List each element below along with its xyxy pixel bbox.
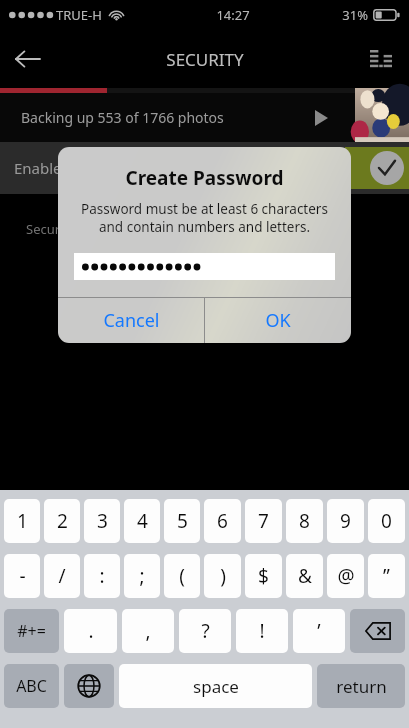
staticText: . — [88, 618, 94, 644]
button[interactable]: . — [64, 609, 117, 653]
staticText: space — [193, 675, 239, 698]
button[interactable]: Backing up 553 of 1766 photos — [0, 88, 355, 142]
staticText: OK — [265, 308, 291, 333]
staticText: 14:27 — [216, 6, 250, 24]
button[interactable]: 8 — [286, 499, 323, 543]
button[interactable]: @ — [327, 554, 364, 598]
staticText: Password must be at least 6 characters a… — [69, 200, 340, 236]
button[interactable]: ? — [179, 609, 231, 653]
staticText: / — [58, 563, 66, 589]
staticText: 5 — [177, 508, 188, 534]
staticText: Security code will be required to be ent… — [26, 220, 295, 238]
staticText: , — [145, 618, 151, 644]
button[interactable]: 4 — [124, 499, 160, 543]
button[interactable]: 6 — [204, 499, 241, 543]
button[interactable]: Cancel — [58, 298, 204, 343]
button[interactable]: 7 — [245, 499, 282, 543]
button[interactable]: Back — [0, 31, 56, 87]
staticText: ” — [383, 563, 390, 589]
button[interactable]: #+= — [4, 609, 59, 653]
button[interactable]: : — [84, 554, 120, 598]
button[interactable]: OK — [205, 298, 351, 343]
button[interactable]: ABC — [4, 664, 59, 708]
staticText: 6 — [217, 508, 228, 534]
staticText: ’ — [317, 618, 321, 644]
button[interactable]: Change keyboard — [64, 664, 114, 708]
staticText: 8 — [299, 508, 310, 534]
button[interactable]: 1 — [4, 499, 40, 543]
staticText: Cancel — [103, 308, 160, 333]
button[interactable]: ( — [164, 554, 200, 598]
staticText: Enable Security — [14, 158, 122, 178]
button[interactable]: space — [119, 664, 312, 708]
button[interactable]: 9 — [327, 499, 364, 543]
button[interactable]: Security enabled — [345, 147, 409, 189]
staticText: ! — [259, 618, 265, 644]
button[interactable]: $ — [245, 554, 282, 598]
button[interactable]: , — [122, 609, 174, 653]
staticText: TRUE-H — [56, 6, 102, 24]
button[interactable]: / — [44, 554, 80, 598]
staticText: 31% — [342, 6, 368, 24]
button[interactable]: & — [286, 554, 323, 598]
staticText: ABC — [16, 675, 47, 697]
button[interactable]: ’ — [293, 609, 345, 653]
staticText: & — [298, 563, 312, 589]
staticText: return — [336, 675, 387, 698]
staticText: $ — [258, 563, 269, 589]
staticText: 1 — [17, 508, 28, 534]
staticText: 0 — [381, 508, 392, 534]
button[interactable]: Enable Security — [0, 142, 409, 194]
button[interactable]: 2 — [44, 499, 80, 543]
staticText: @ — [337, 563, 355, 589]
staticText: - — [19, 563, 26, 589]
staticText: 4 — [137, 508, 148, 534]
staticText: : — [99, 563, 105, 589]
staticText: #+= — [17, 620, 46, 642]
button[interactable]: 5 — [164, 499, 200, 543]
button[interactable]: Photo being backed up — [355, 88, 409, 142]
staticText: Create Password — [58, 165, 351, 191]
button[interactable]: 3 — [84, 499, 120, 543]
staticText: ; — [139, 563, 145, 589]
button[interactable]: ; — [124, 554, 160, 598]
button[interactable]: Resume backup — [307, 104, 335, 132]
button[interactable]: ” — [368, 554, 405, 598]
staticText: 2 — [57, 508, 68, 534]
button[interactable]: Sort and filter — [353, 31, 409, 87]
button[interactable]: Password field — [74, 253, 335, 280]
button[interactable]: ) — [204, 554, 241, 598]
button[interactable]: ! — [236, 609, 288, 653]
button[interactable]: return — [317, 664, 405, 708]
staticText: 7 — [258, 508, 269, 534]
staticText: ( — [179, 563, 185, 589]
staticText: SECURITY — [166, 48, 244, 71]
staticText: 3 — [97, 508, 108, 534]
staticText: ? — [201, 618, 210, 644]
staticText: 9 — [340, 508, 351, 534]
button[interactable]: - — [4, 554, 40, 598]
button[interactable]: 0 — [368, 499, 405, 543]
staticText: Backing up 553 of 1766 photos — [21, 108, 224, 127]
button[interactable]: Backspace — [350, 609, 405, 653]
staticText: ) — [220, 563, 226, 589]
